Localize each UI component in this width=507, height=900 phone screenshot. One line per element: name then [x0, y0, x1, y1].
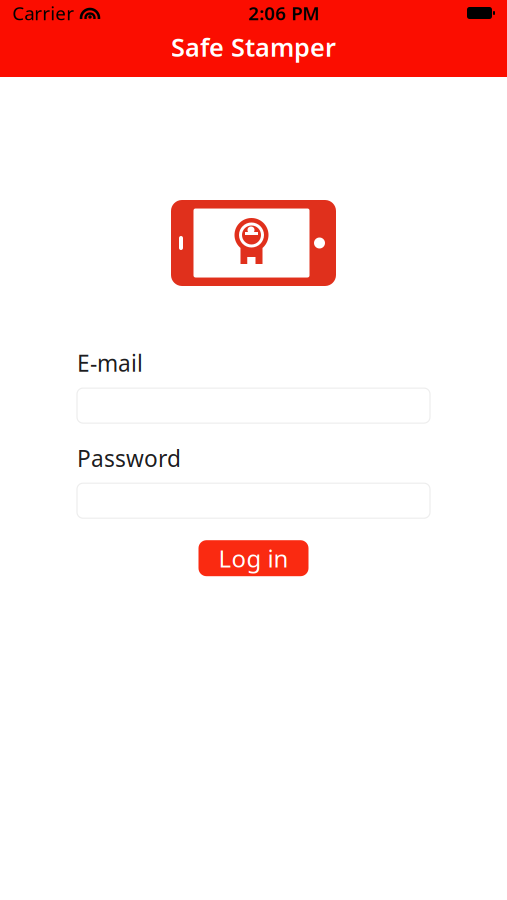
- staticText: Log in: [218, 542, 288, 574]
- staticText: Safe Stamper: [171, 30, 336, 64]
- staticText: Carrier: [12, 1, 74, 25]
- staticText: 2:06 PM: [248, 1, 319, 25]
- button[interactable]: Log in: [198, 540, 308, 576]
- staticText: Password: [77, 443, 181, 473]
- staticText: E-mail: [77, 348, 143, 378]
